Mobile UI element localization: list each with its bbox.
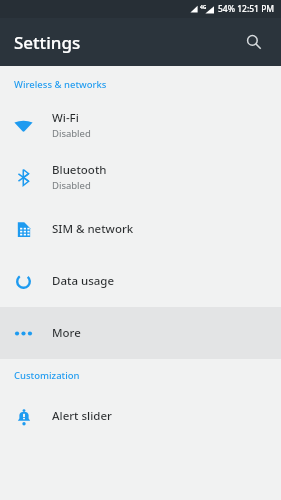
staticText: Bluetooth [52,162,107,178]
button[interactable]: Wi-Fi [0,99,281,151]
staticText: Wi-Fi [52,110,79,126]
staticText: More [52,325,81,341]
button[interactable]: Data usage [0,255,281,307]
staticText: Disabled [52,127,91,140]
button[interactable]: Alert slider [0,390,281,442]
staticText: SIM & network [52,221,134,237]
staticText: Customization [14,369,80,382]
staticText: Alert slider [52,408,112,424]
button[interactable]: More [0,307,281,359]
staticText: 4G [200,4,207,11]
button[interactable]: Search [235,23,273,61]
staticText: Settings [14,31,81,54]
staticText: 54% 12:51 PM [218,3,275,15]
staticText: Data usage [52,273,115,289]
button[interactable]: SIM & network [0,203,281,255]
button[interactable]: Bluetooth [0,151,281,203]
staticText: Disabled [52,179,91,192]
staticText: Wireless & networks [14,78,107,91]
